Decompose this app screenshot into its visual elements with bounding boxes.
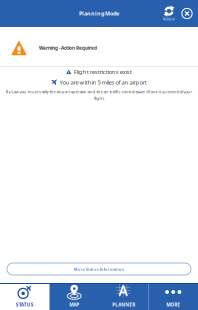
staticText: Planning Mode (79, 10, 119, 17)
staticText: Warning - Action Required (39, 45, 97, 51)
staticText: By Law you must notify the airport opera… (5, 89, 192, 94)
button[interactable]: More Status Information (7, 263, 191, 275)
button[interactable]: PLANNER (99, 284, 148, 310)
staticText: STATUS (16, 301, 34, 308)
staticText: MAP (69, 301, 79, 308)
staticText: Flight restrictions exist (74, 68, 132, 76)
button[interactable]: MAP (49, 284, 99, 310)
staticText: You are within 5 miles of an airport (60, 78, 147, 86)
button[interactable]: Refresh (159, 0, 179, 27)
staticText: flight. (93, 95, 104, 101)
button[interactable]: STATUS (0, 284, 49, 310)
staticText: Refresh (163, 17, 175, 21)
staticText: PLANNER (112, 301, 135, 308)
staticText: MORE (166, 301, 180, 308)
staticText: More Status Information (73, 266, 124, 272)
button[interactable]: Close (179, 0, 195, 27)
button[interactable]: MORE (148, 284, 198, 310)
